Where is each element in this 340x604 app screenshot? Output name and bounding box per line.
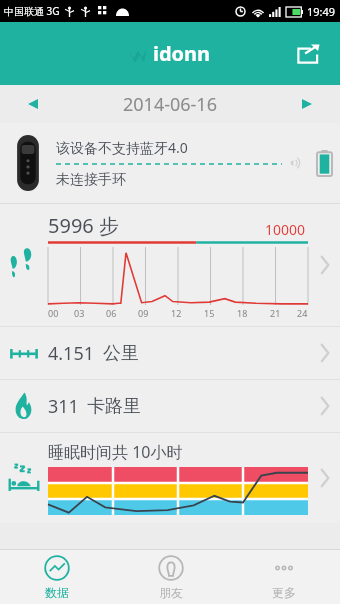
staticText: 朋友	[159, 585, 183, 600]
staticText: 00	[48, 307, 59, 319]
staticText: 18	[237, 307, 248, 319]
staticText: 睡眠时间共 10小时	[48, 441, 183, 463]
button[interactable]: 4.151	[0, 327, 340, 379]
button[interactable]: Next day	[292, 89, 322, 119]
button[interactable]: 311	[0, 380, 340, 432]
staticText: 06	[106, 307, 117, 319]
button[interactable]: 睡眠时间共 10小时	[0, 433, 340, 523]
button[interactable]: 5996 步	[0, 204, 340, 326]
staticText: 21	[270, 307, 281, 319]
staticText: 更多	[272, 585, 296, 600]
button[interactable]: 数据	[0, 550, 114, 604]
button[interactable]: 更多	[227, 550, 340, 604]
staticText: 10000	[265, 220, 306, 239]
staticText: 09	[138, 307, 149, 319]
staticText: 未连接手环	[56, 171, 126, 189]
staticText: 4.151	[48, 341, 95, 366]
staticText: idonn	[153, 40, 211, 67]
staticText: 19:49	[307, 4, 336, 19]
staticText: 中国联通 3G	[4, 4, 60, 18]
staticText: 15	[204, 307, 215, 319]
button[interactable]: 朋友	[114, 550, 227, 604]
staticText: 24	[297, 307, 308, 319]
staticText: 12	[171, 307, 182, 319]
button[interactable]: Previous day	[18, 89, 48, 119]
button[interactable]: Share	[290, 36, 326, 72]
staticText: 卡路里	[87, 395, 141, 418]
staticText: 2014-06-16	[123, 92, 217, 117]
staticText: 311	[48, 394, 79, 419]
staticText: 公里	[103, 342, 139, 365]
staticText: 5996 步	[48, 212, 119, 239]
staticText: 03	[74, 307, 85, 319]
button[interactable]: 该设备不支持蓝牙4.0	[0, 123, 340, 203]
staticText: 数据	[45, 585, 69, 600]
staticText: 该设备不支持蓝牙4.0	[56, 138, 188, 157]
